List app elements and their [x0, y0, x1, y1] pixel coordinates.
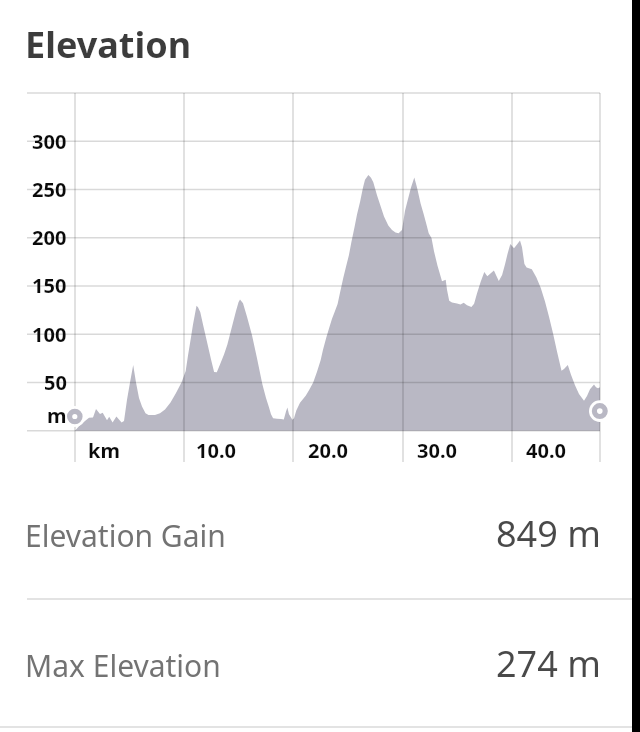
button[interactable]: Elevation [25, 20, 192, 69]
staticText: 150 [32, 272, 67, 299]
button[interactable]: Max Elevation [0, 600, 632, 728]
staticText: 50 [44, 369, 67, 396]
staticText: 40.0 [526, 437, 566, 464]
staticText: 250 [32, 176, 67, 203]
other: Elevation profile chart [0, 0, 640, 732]
staticText: Max Elevation [25, 645, 221, 686]
staticText: 849 m [496, 509, 601, 558]
staticText: 20.0 [308, 437, 348, 464]
staticText: 300 [32, 128, 67, 155]
staticText: Elevation Gain [25, 515, 226, 556]
staticText: km [88, 437, 120, 464]
staticText: 100 [32, 321, 67, 348]
staticText: Elevation [25, 20, 192, 69]
staticText: 30.0 [417, 437, 457, 464]
button[interactable]: Elevation Gain [0, 471, 632, 598]
staticText: 274 m [496, 639, 601, 688]
staticText: 10.0 [196, 437, 236, 464]
staticText: 200 [32, 224, 67, 251]
staticText: m [47, 402, 67, 429]
